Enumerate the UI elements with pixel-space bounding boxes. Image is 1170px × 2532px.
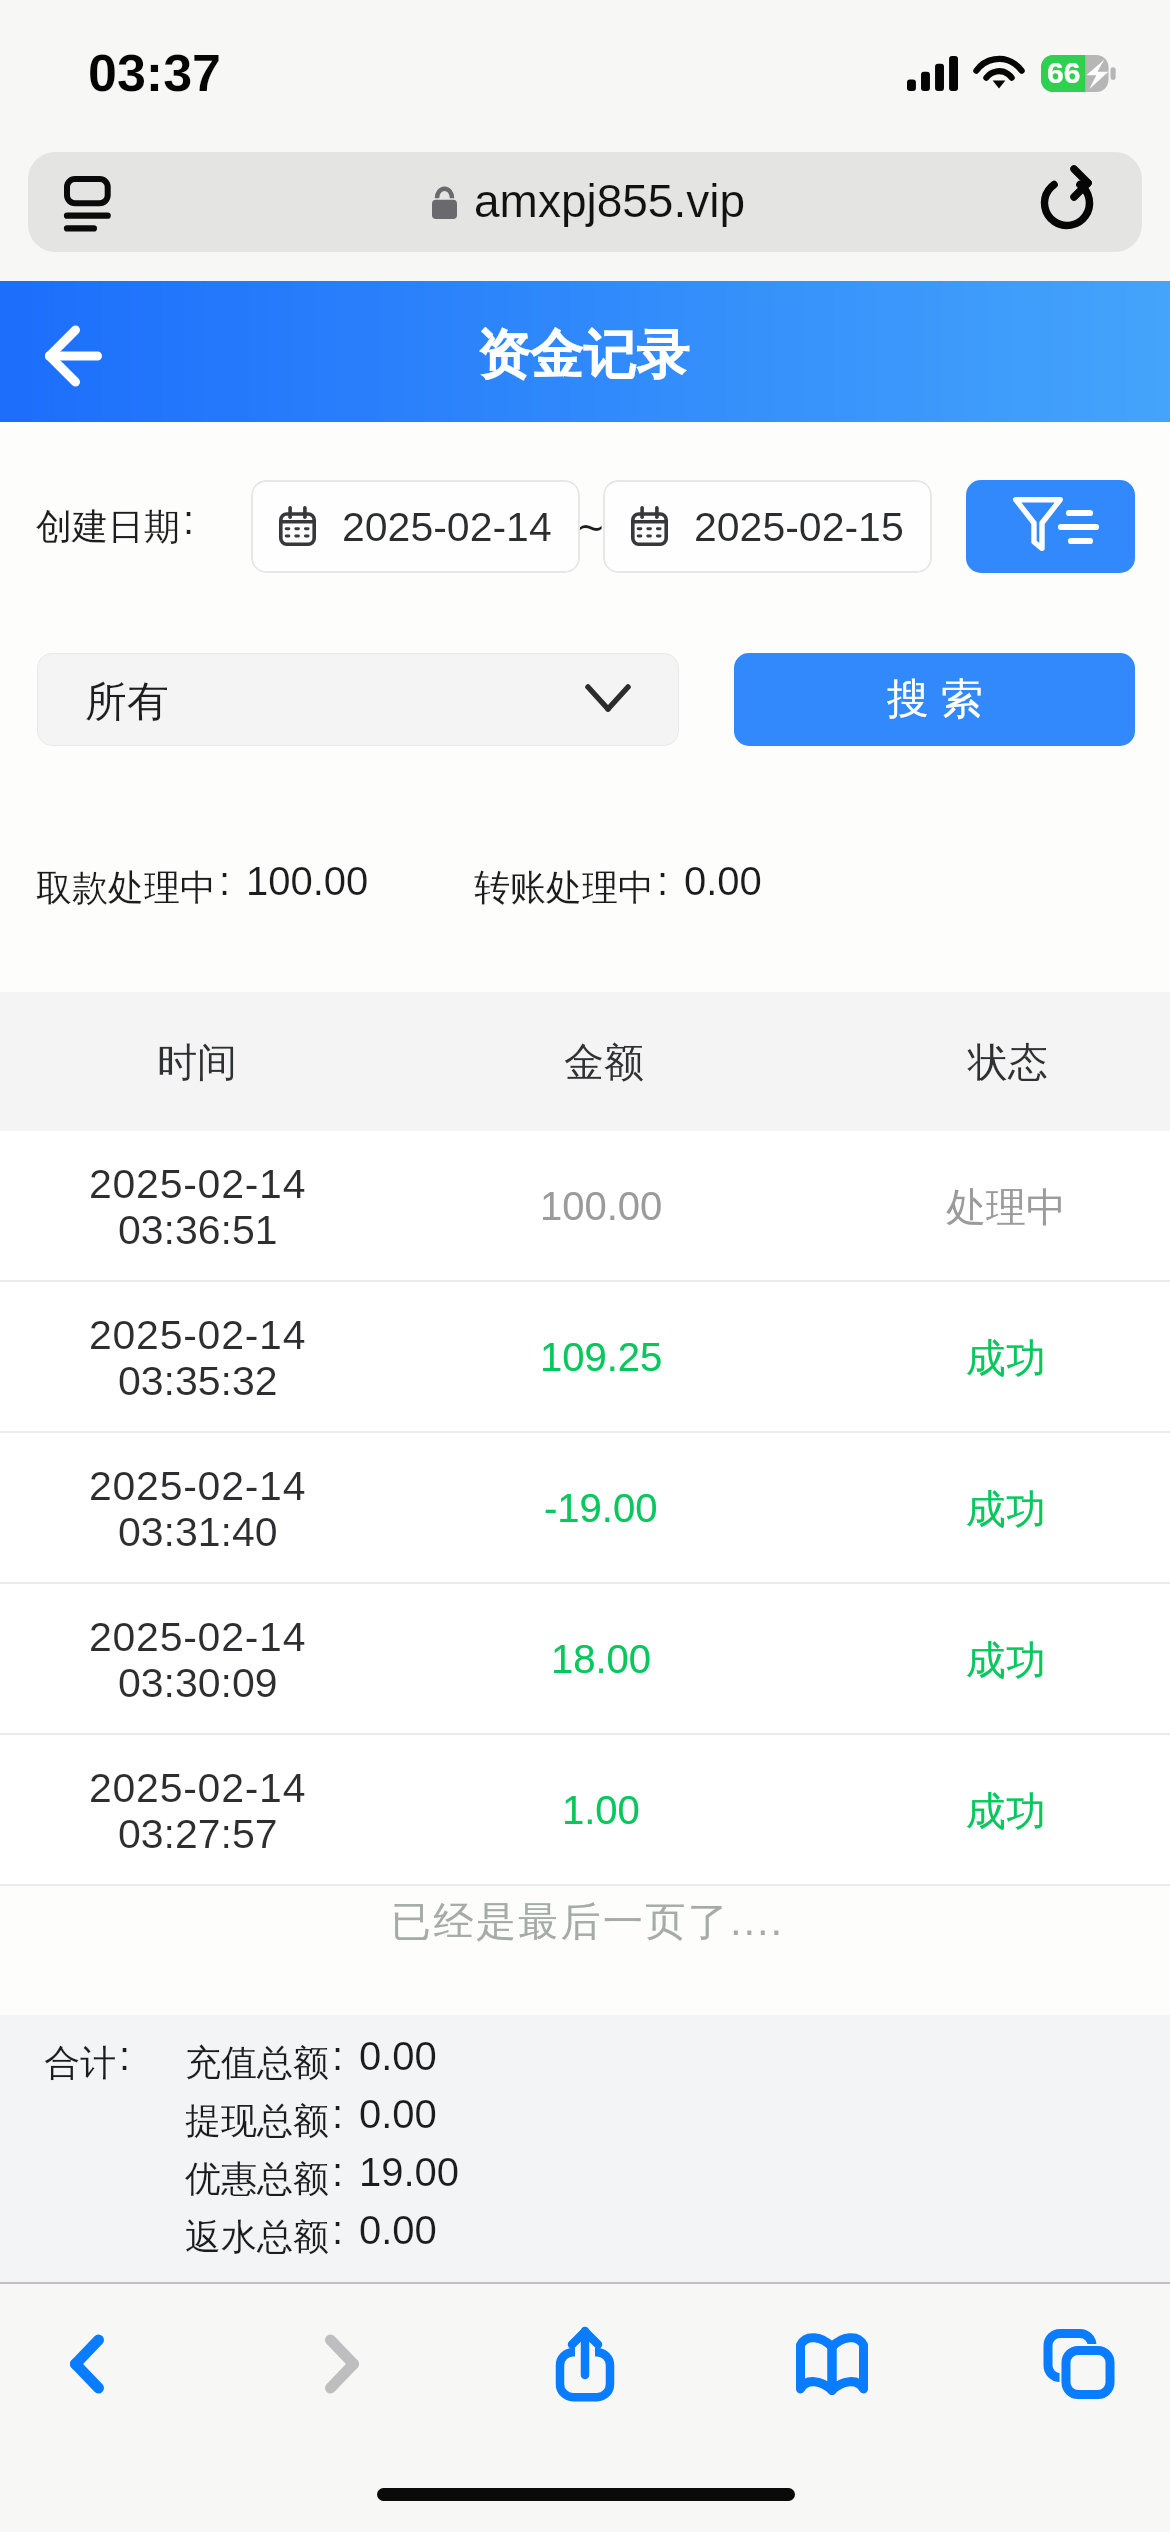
button[interactable]: Filter xyxy=(966,480,1135,573)
staticText: 充值总额 xyxy=(185,2040,329,2085)
button[interactable]: Back xyxy=(20,305,122,397)
staticText: 返水总额 xyxy=(185,2214,329,2259)
staticText: 时间 xyxy=(157,1037,237,1087)
staticText: 成功 xyxy=(966,1786,1046,1836)
button[interactable]: Page settings xyxy=(64,176,114,233)
staticText: : xyxy=(332,2092,344,2137)
staticText: 66 xyxy=(1047,56,1081,90)
staticText: 19.00 xyxy=(359,2150,460,2195)
staticText: 2025-02-15 xyxy=(694,504,904,550)
button[interactable]: Reload xyxy=(1042,170,1094,230)
staticText: 状态 xyxy=(968,1037,1048,1087)
staticText: 优惠总额 xyxy=(185,2156,329,2201)
staticText: 0.00 xyxy=(684,859,762,904)
staticText: 2025-02-14 xyxy=(89,1765,307,1811)
staticText: 2025-02-14 xyxy=(89,1161,307,1207)
button[interactable]: 2025-02-14 xyxy=(0,1131,1170,1282)
staticText: -19.00 xyxy=(544,1486,658,1531)
staticText: 100.00 xyxy=(540,1184,663,1229)
staticText: : xyxy=(332,2034,344,2079)
staticText: 转账处理中 xyxy=(474,865,654,910)
staticText: 已经是最后一页了.... xyxy=(391,1896,785,1946)
staticText: 搜 索 xyxy=(887,673,983,726)
staticText: 成功 xyxy=(966,1333,1046,1383)
staticText: 109.25 xyxy=(540,1335,663,1380)
staticText: 2025-02-14 xyxy=(89,1614,307,1660)
staticText: : xyxy=(119,2034,131,2079)
staticText: 100.00 xyxy=(246,859,369,904)
staticText: 03:36:51 xyxy=(118,1207,278,1253)
staticText: 03:27:57 xyxy=(118,1811,278,1857)
staticText: 处理中 xyxy=(946,1182,1066,1232)
button[interactable]: 所有 xyxy=(37,653,679,746)
staticText: 2025-02-14 xyxy=(342,504,552,550)
staticText: 创建日期 xyxy=(36,504,180,549)
staticText: 0.00 xyxy=(359,2034,437,2079)
staticText: : xyxy=(219,859,231,904)
staticText: 18.00 xyxy=(551,1637,652,1682)
staticText: 成功 xyxy=(966,1484,1046,1534)
staticText: 0.00 xyxy=(359,2208,437,2253)
button[interactable]: Bookmarks xyxy=(755,2299,908,2429)
staticText: 成功 xyxy=(966,1635,1046,1685)
button[interactable]: 2025-02-14 xyxy=(0,1433,1170,1584)
button[interactable]: 2025-02-14 xyxy=(0,1735,1170,1886)
staticText: 03:35:32 xyxy=(118,1358,278,1404)
button[interactable]: Page settings xyxy=(28,152,1142,252)
button[interactable]: 2025-02-15 xyxy=(603,480,932,573)
button[interactable]: 2025-02-14 xyxy=(0,1282,1170,1433)
staticText: ~ xyxy=(578,503,604,552)
staticText: 资金记录 xyxy=(477,322,689,389)
staticText: 金额 xyxy=(564,1037,644,1087)
staticText: : xyxy=(332,2150,344,2195)
staticText: 2025-02-14 xyxy=(89,1312,307,1358)
button[interactable]: 搜 索 xyxy=(734,653,1135,746)
staticText: 03:31:40 xyxy=(118,1509,278,1555)
staticText: 提现总额 xyxy=(185,2098,329,2143)
staticText: amxpj855.vip xyxy=(474,175,746,226)
button[interactable]: Back xyxy=(10,2299,163,2429)
staticText: 2025-02-14 xyxy=(89,1463,307,1509)
button[interactable]: Forward xyxy=(265,2299,418,2429)
button[interactable]: Share xyxy=(508,2299,661,2429)
staticText: : xyxy=(657,859,669,904)
staticText: 03:37 xyxy=(88,44,221,102)
staticText: 取款处理中 xyxy=(36,865,216,910)
staticText: 03:30:09 xyxy=(118,1660,278,1706)
staticText: : xyxy=(332,2208,344,2253)
staticText: 1.00 xyxy=(562,1788,640,1833)
staticText: : xyxy=(183,498,195,543)
staticText: 所有 xyxy=(85,676,169,729)
button[interactable]: Tabs xyxy=(1002,2299,1155,2429)
staticText: 0.00 xyxy=(359,2092,437,2137)
button[interactable]: 2025-02-14 xyxy=(0,1584,1170,1735)
button[interactable]: 2025-02-14 xyxy=(251,480,580,573)
staticText: 合计 xyxy=(44,2040,116,2085)
